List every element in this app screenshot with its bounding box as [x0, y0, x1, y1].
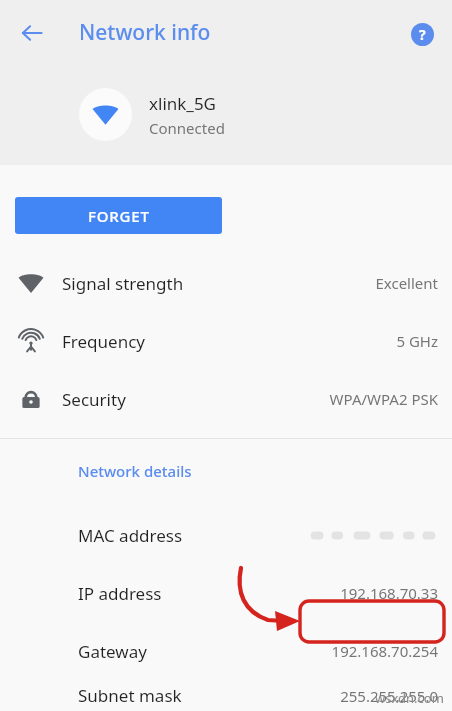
staticText: Subnet mask	[78, 684, 182, 707]
button[interactable]: Back	[10, 11, 54, 55]
staticText: Connected	[149, 118, 225, 138]
button[interactable]: Security	[0, 370, 452, 428]
staticText: 192.168.70.33	[340, 583, 438, 603]
staticText: Gateway	[78, 640, 147, 663]
button[interactable]: Subnet mask	[0, 680, 452, 711]
staticText: xlink_5G	[149, 92, 216, 115]
staticText: MAC address	[78, 524, 183, 547]
staticText: Security	[62, 388, 126, 411]
staticText: 192.168.70.254	[331, 641, 438, 661]
button[interactable]: MAC address	[0, 506, 452, 564]
button[interactable]: Gateway	[0, 622, 452, 680]
staticText: 255.255.255.0	[340, 686, 438, 706]
staticText: ?	[419, 25, 426, 44]
staticText: Frequency	[62, 330, 145, 353]
button[interactable]: Signal strength	[0, 254, 452, 312]
staticText: Network info	[79, 18, 211, 47]
staticText: 5 GHz	[396, 331, 438, 351]
staticText: Signal strength	[62, 272, 184, 295]
staticText: wsxdn.com	[375, 689, 444, 707]
staticText: Network details	[78, 461, 192, 481]
staticText: FORGET	[88, 206, 150, 226]
button[interactable]: Frequency	[0, 312, 452, 370]
button[interactable]: Help	[400, 12, 444, 56]
staticText: IP address	[78, 582, 162, 605]
staticText: Excellent	[375, 273, 438, 293]
button[interactable]: IP address	[0, 564, 452, 622]
staticText: WPA/WPA2 PSK	[329, 389, 438, 409]
button[interactable]: FORGET	[15, 197, 222, 234]
